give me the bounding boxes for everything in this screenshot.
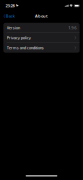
staticText: Version (7, 25, 20, 30)
button[interactable]: Privacy policy (3, 33, 80, 43)
staticText: Privacy policy (7, 35, 31, 40)
staticText: 1.9.6 (68, 25, 76, 30)
staticText: Terms and conditions (7, 45, 44, 50)
button[interactable]: Version (3, 23, 80, 32)
button[interactable]: Terms and conditions (3, 43, 80, 53)
staticText: About (35, 13, 48, 19)
staticText: 23:28 (5, 3, 14, 8)
staticText: Back (6, 13, 15, 19)
button[interactable]: Back (0, 11, 16, 21)
